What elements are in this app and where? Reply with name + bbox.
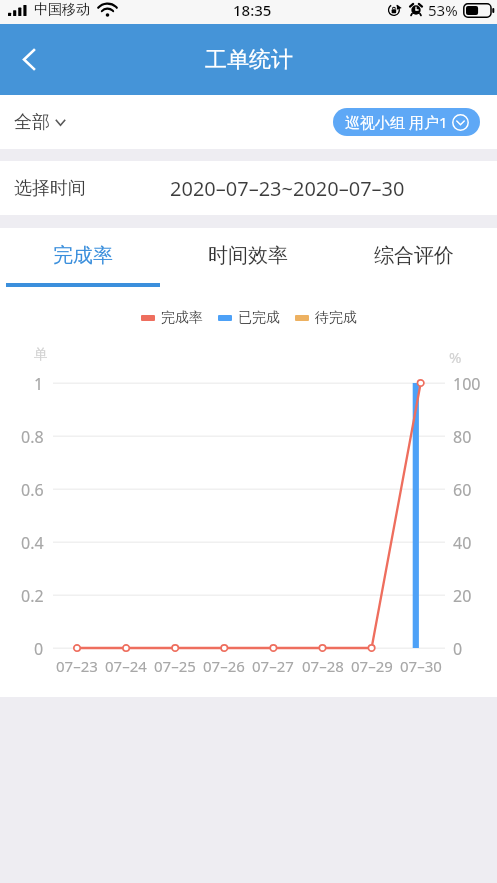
staticText: 07–24 xyxy=(105,656,147,676)
staticText: 07–25 xyxy=(154,656,196,676)
staticText: 单 xyxy=(34,346,48,364)
staticText: 53% xyxy=(428,0,458,20)
button[interactable]: 全部 xyxy=(0,95,76,149)
staticText: 0 xyxy=(34,638,44,658)
staticText: 100 xyxy=(453,373,481,393)
staticText: 1 xyxy=(34,373,44,393)
staticText: 40 xyxy=(453,532,472,552)
button[interactable]: 选择时间 xyxy=(0,161,497,215)
staticText: 07–28 xyxy=(302,656,344,676)
staticText: 60 xyxy=(453,479,472,499)
staticText: 巡视小组 用户1 xyxy=(345,112,448,132)
staticText: 0.2 xyxy=(21,585,44,605)
staticText: 07–29 xyxy=(351,656,393,676)
staticText: 选择时间 xyxy=(14,177,86,200)
staticText: 工单统计 xyxy=(205,46,293,74)
staticText: 待完成 xyxy=(315,309,357,327)
staticText: 2020–07–23~2020–07–30 xyxy=(170,175,405,202)
staticText: 全部 xyxy=(14,111,50,134)
staticText: 0.8 xyxy=(21,426,44,446)
staticText: 07–26 xyxy=(203,656,245,676)
staticText: 07–30 xyxy=(400,656,442,676)
button[interactable]: 巡视小组 用户1 xyxy=(333,108,480,136)
staticText: 07–23 xyxy=(56,656,98,676)
staticText: 时间效率 xyxy=(208,243,288,268)
staticText: 已完成 xyxy=(238,309,280,327)
button[interactable]: 完成率 xyxy=(0,228,165,287)
staticText: 80 xyxy=(453,426,472,446)
staticText: 07–27 xyxy=(252,656,294,676)
button[interactable]: Back xyxy=(0,24,58,95)
button[interactable]: 时间效率 xyxy=(165,228,331,287)
staticText: 完成率 xyxy=(53,243,113,268)
staticText: 0 xyxy=(453,638,463,658)
button[interactable]: 综合评价 xyxy=(331,228,497,287)
staticText: 20 xyxy=(453,585,472,605)
staticText: 综合评价 xyxy=(374,243,454,268)
staticText: 0.6 xyxy=(21,479,44,499)
staticText: 中国移动 xyxy=(34,1,90,19)
staticText: % xyxy=(449,347,462,367)
staticText: 18:35 xyxy=(233,0,272,20)
staticText: 完成率 xyxy=(161,309,203,327)
staticText: 0.4 xyxy=(21,532,44,552)
